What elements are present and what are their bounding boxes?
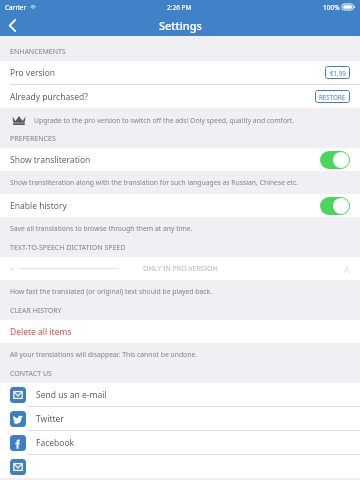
staticText: TEXT-TO-SPEECH DICTATION SPEED <box>10 243 126 253</box>
staticText: Show transliteration <box>10 154 91 166</box>
staticText: How fast the translated (or original) te… <box>10 287 213 296</box>
staticText: Save all translations to browse through … <box>10 224 193 233</box>
button[interactable]: Already purchased? <box>0 85 360 108</box>
staticText: ENHANCEMENTS <box>10 47 66 57</box>
staticText: Twitter <box>36 413 64 425</box>
staticText: CONTACT US <box>10 369 52 379</box>
button[interactable]: Pro version <box>0 61 360 84</box>
button[interactable]: Enable history <box>0 194 360 217</box>
button[interactable]: Facebook <box>0 431 360 454</box>
staticText: A <box>344 263 350 275</box>
button[interactable]: Delete all items <box>0 320 360 343</box>
staticText: Carrier <box>5 3 27 12</box>
staticText: A <box>10 265 14 273</box>
staticText: Pro version <box>10 67 56 79</box>
staticText: CLEAR HISTORY <box>10 306 62 316</box>
button[interactable]: Toggle <box>320 197 350 215</box>
staticText: RESTORE <box>319 93 346 101</box>
staticText: Already purchased? <box>10 91 89 103</box>
staticText: Enable history <box>10 200 67 212</box>
staticText: Show transliteration along with the tran… <box>10 178 299 187</box>
staticText: All your translations will disappear. Th… <box>10 350 198 359</box>
staticText: Send us an e-mail <box>36 389 107 401</box>
button[interactable]: Send us an e-mail <box>0 383 360 406</box>
staticText: ONLY IN PRO VERSION <box>143 264 218 274</box>
button[interactable]: Back <box>1 14 23 36</box>
staticText: 2:26 PM <box>167 3 192 12</box>
staticText: 100% <box>323 3 340 12</box>
button[interactable]: Toggle <box>320 151 350 169</box>
button[interactable]: Twitter <box>0 407 360 430</box>
staticText: Facebook <box>36 437 75 449</box>
staticText: Upgrade to the pro version to switch off… <box>34 116 295 125</box>
button[interactable]: Show transliteration <box>0 148 360 171</box>
staticText: Delete all items <box>10 326 72 338</box>
button[interactable]: RESTORE <box>315 90 350 103</box>
staticText: PREFERENCES <box>10 134 56 144</box>
button[interactable]: More <box>0 455 360 478</box>
button[interactable]: Dictation speed (pro only) <box>0 257 360 280</box>
button[interactable]: €1,99 <box>325 66 350 79</box>
staticText: Settings <box>159 18 202 33</box>
staticText: €1,99 <box>330 69 346 77</box>
